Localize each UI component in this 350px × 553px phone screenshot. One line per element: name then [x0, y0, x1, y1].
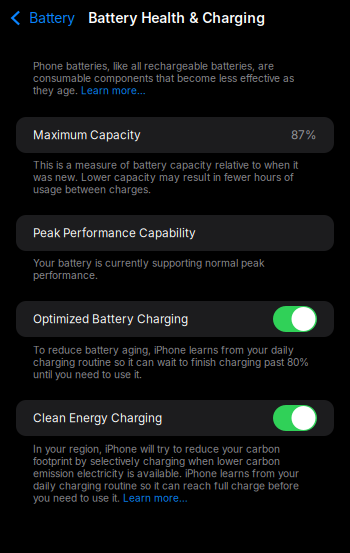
staticText: Maximum Capacity [33, 128, 141, 142]
staticText: Peak Performance Capability [33, 226, 196, 240]
staticText: 87% [291, 128, 317, 142]
staticText: Phone batteries, like all rechargeable b… [33, 60, 294, 97]
button[interactable]: Battery [0, 1, 81, 35]
button[interactable]: Clean Energy Charging [16, 400, 334, 436]
staticText: Your battery is currently supporting nor… [33, 257, 265, 281]
staticText: Clean Energy Charging [33, 411, 162, 425]
button[interactable]: Optimized Battery Charging [16, 301, 334, 337]
staticText: This is a measure of battery capacity re… [33, 159, 298, 196]
staticText: To reduce battery aging, iPhone learns f… [33, 344, 309, 381]
button[interactable]: Maximum Capacity [16, 117, 334, 153]
staticText: Battery Health & Charging [88, 9, 265, 26]
staticText: Optimized Battery Charging [33, 312, 188, 326]
button[interactable]: Peak Performance Capability [16, 215, 334, 251]
staticText: In your region, iPhone will try to reduc… [33, 443, 299, 504]
staticText: Battery [29, 9, 75, 26]
